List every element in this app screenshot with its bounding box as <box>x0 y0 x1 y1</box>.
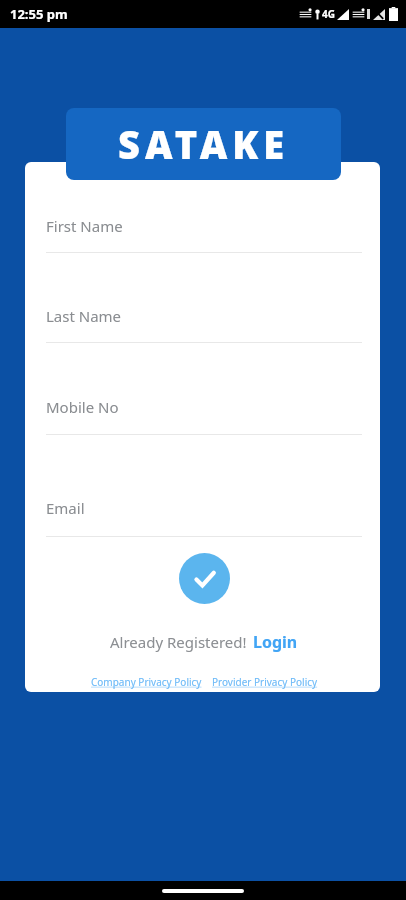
staticText: Last Name <box>46 306 122 326</box>
staticText: Company Privacy Policy <box>91 675 202 689</box>
button[interactable]: First Name <box>46 216 362 236</box>
button[interactable]: Submit registration <box>179 553 230 604</box>
button[interactable]: Provider Privacy Policy <box>212 675 318 689</box>
staticText: 12:55 pm <box>10 5 68 23</box>
staticText: Already Registered! <box>110 632 247 652</box>
button[interactable]: Email <box>46 498 362 518</box>
button[interactable]: Mobile No <box>46 397 362 417</box>
button[interactable]: Login <box>253 631 298 653</box>
staticText: Login <box>253 631 298 653</box>
staticText: Mobile No <box>46 397 119 417</box>
staticText: Provider Privacy Policy <box>212 675 318 689</box>
staticText: First Name <box>46 216 123 236</box>
button[interactable]: SATAKE <box>66 108 341 180</box>
button[interactable]: Last Name <box>46 306 362 326</box>
button[interactable]: Company Privacy Policy <box>91 675 202 689</box>
staticText: SATAKE <box>118 118 290 170</box>
staticText: 4G <box>322 7 335 21</box>
staticText: Email <box>46 498 85 518</box>
